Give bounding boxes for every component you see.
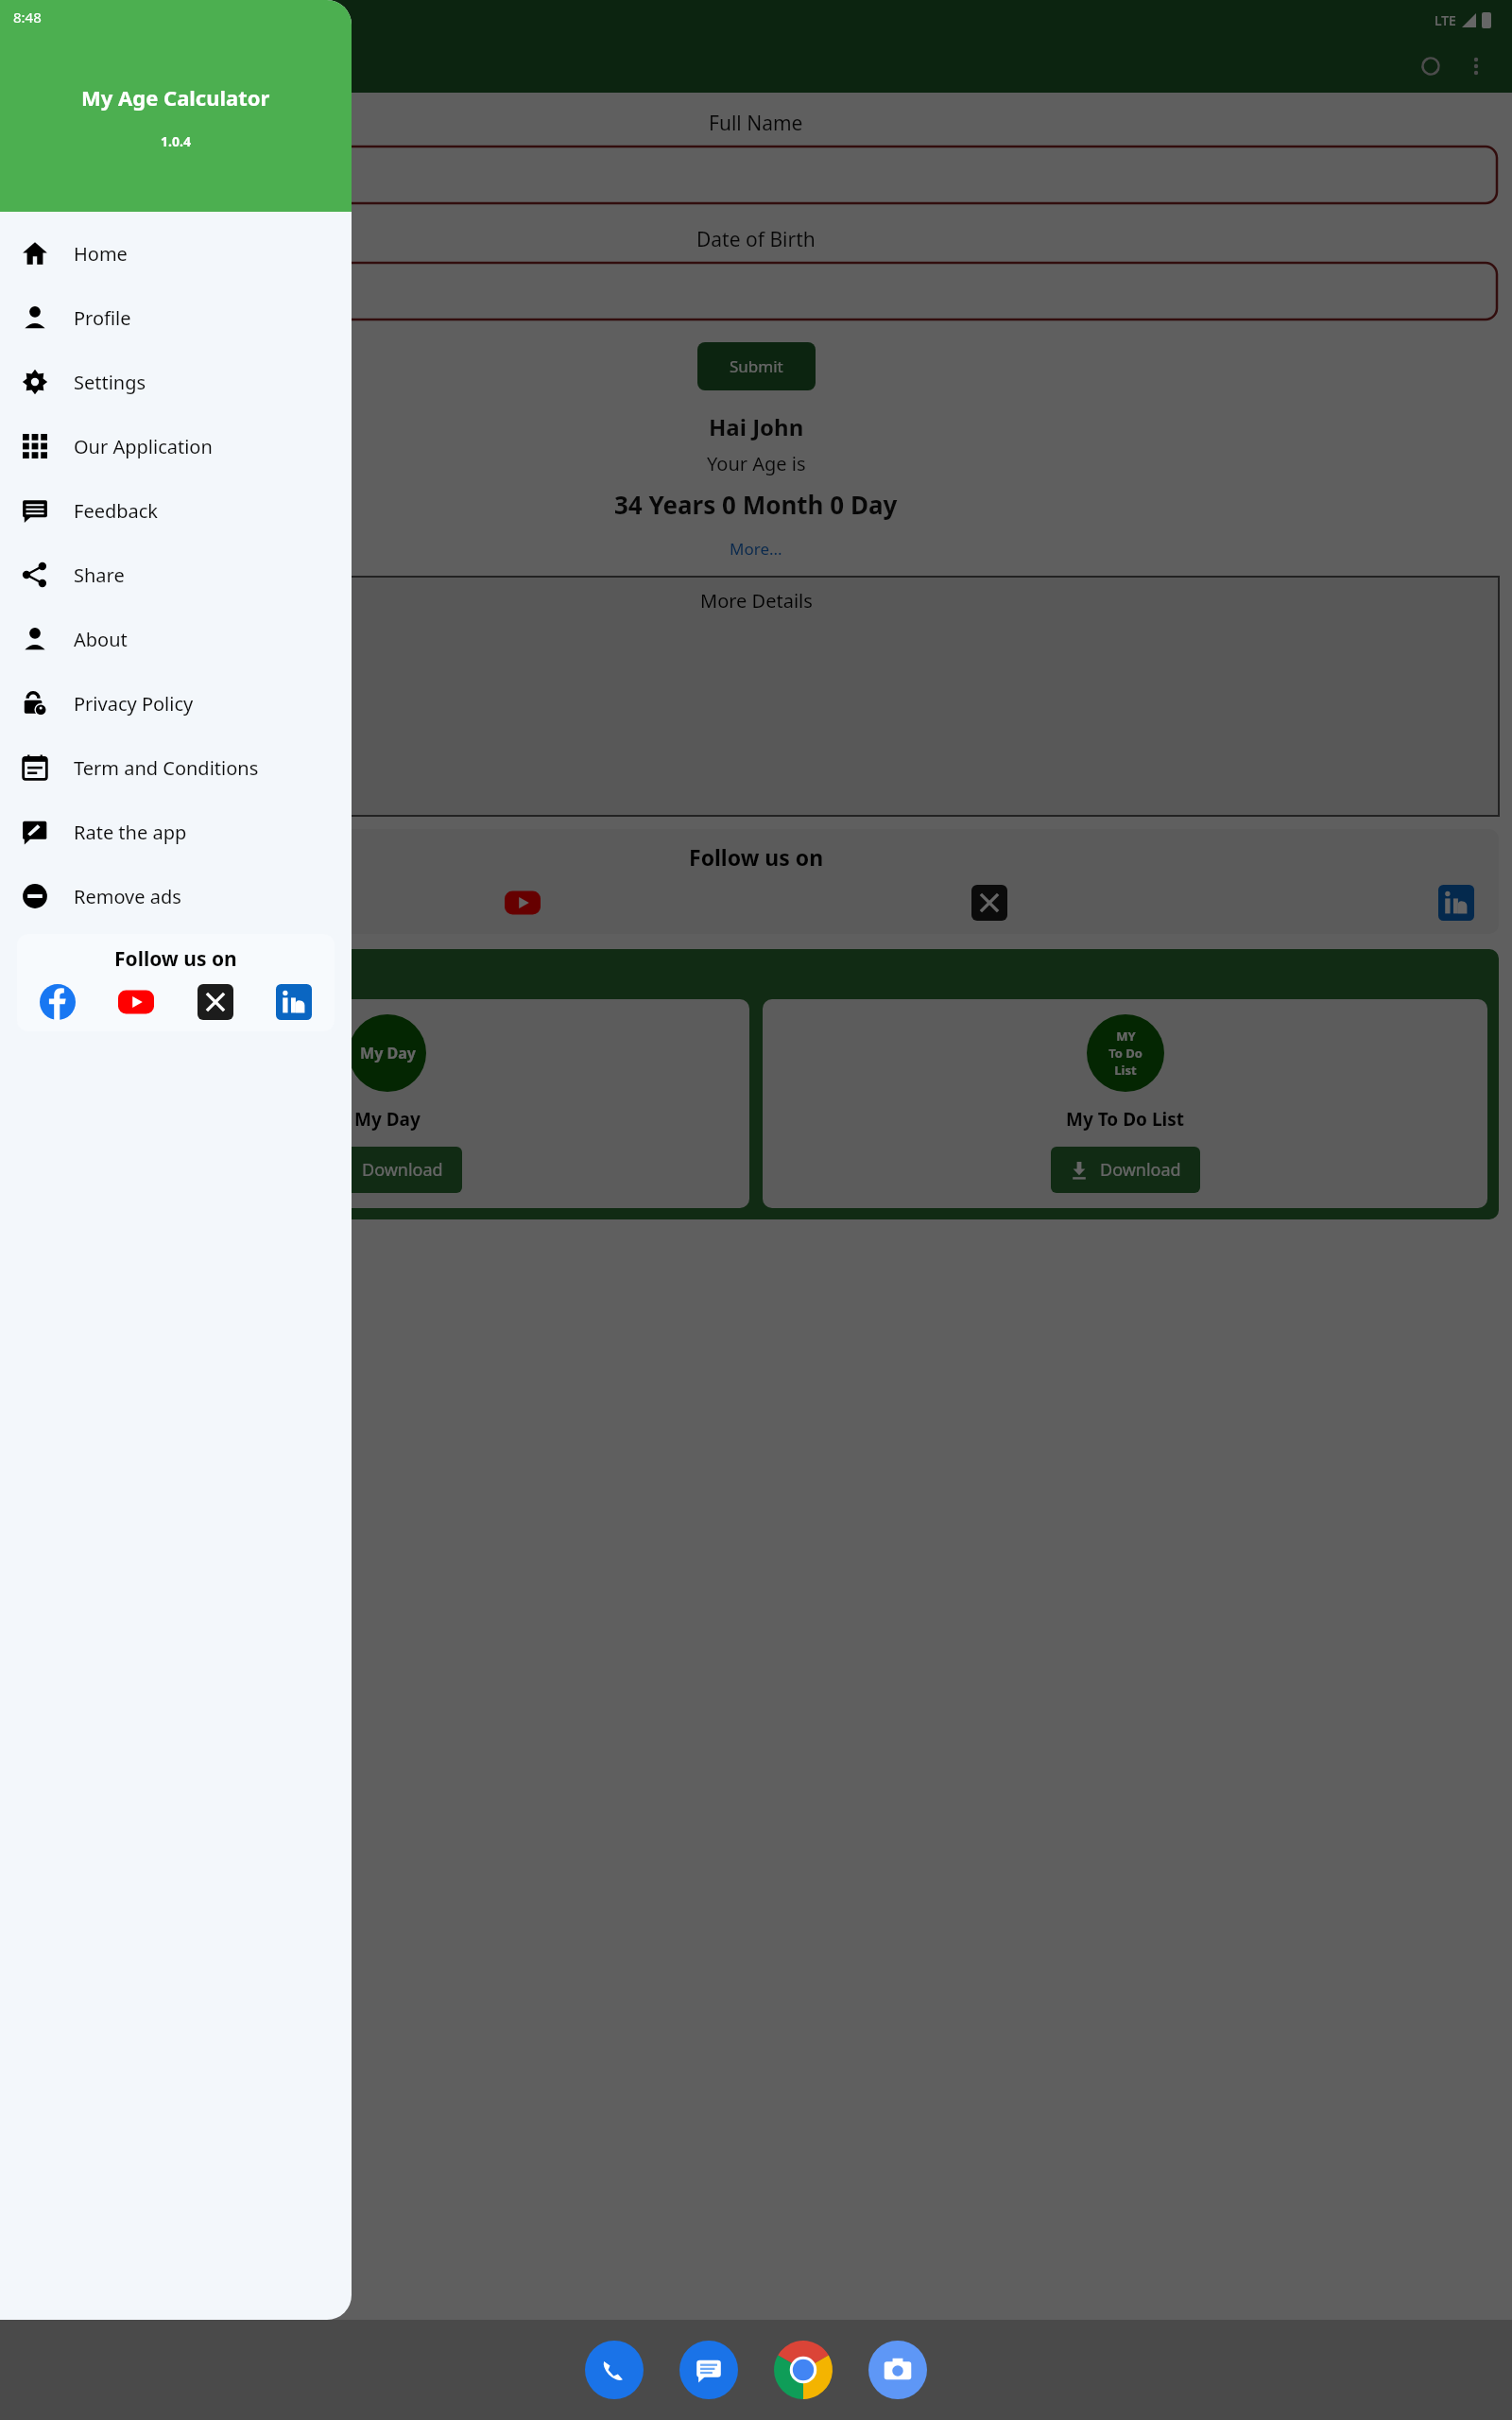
staticText: Settings	[74, 370, 146, 395]
button[interactable]: Profile	[0, 285, 352, 350]
staticText: To Do	[1108, 1045, 1143, 1062]
button[interactable]: Messages	[675, 2336, 743, 2404]
staticText: 1.0.4	[161, 132, 191, 150]
button[interactable]: X	[198, 984, 233, 1020]
staticText: 17882448	[200, 738, 283, 763]
staticText: My Age Calculator	[81, 83, 270, 112]
button[interactable]: Term and Conditions	[0, 735, 352, 800]
staticText: Term and Conditions	[74, 755, 259, 781]
button[interactable]: YouTube	[118, 984, 154, 1020]
staticText: Rate the app	[74, 820, 187, 845]
staticText: Share	[74, 562, 125, 588]
staticText: 1072946900	[200, 774, 303, 799]
staticText: Download	[362, 1158, 443, 1182]
button[interactable]: Rate the app	[0, 800, 352, 864]
staticText: Total Hour :	[30, 702, 129, 727]
button[interactable]: LinkedIn	[276, 984, 312, 1020]
button[interactable]: Download	[1051, 1147, 1200, 1193]
staticText: Download	[1100, 1158, 1181, 1182]
staticText: My Day	[360, 1043, 416, 1063]
staticText: Hai John	[709, 411, 804, 442]
button[interactable]: Refresh	[1408, 43, 1453, 89]
button[interactable]: Download	[313, 1147, 462, 1193]
button[interactable]: Home	[0, 221, 352, 285]
staticText: Full Name	[709, 110, 803, 137]
button[interactable]: Chrome	[769, 2336, 837, 2404]
staticText: 34 Years 0 Month 0 Day	[614, 488, 898, 521]
button[interactable]: My Day	[25, 999, 749, 1208]
staticText: My To Do List	[1066, 1107, 1184, 1132]
button[interactable]: MY	[763, 999, 1487, 1208]
staticText: Date of Birth	[696, 226, 816, 253]
staticText: Total Seconds :	[30, 774, 156, 799]
staticText: Total Month :	[30, 631, 142, 655]
button[interactable]: Feedback	[0, 478, 352, 543]
staticText: Please try our lastest applications	[25, 960, 337, 988]
staticText: More...	[730, 538, 782, 560]
button[interactable]: Privacy Policy	[0, 671, 352, 735]
button[interactable]: Phone	[580, 2336, 648, 2404]
button[interactable]: Submit	[697, 342, 816, 390]
staticText: Profile	[74, 305, 131, 331]
button[interactable]: Our Application	[0, 414, 352, 478]
staticText: 8:48	[13, 8, 42, 26]
staticText: Feedback	[74, 498, 159, 524]
staticText: My Day	[354, 1107, 421, 1132]
staticText: Total Minutes :	[30, 738, 154, 763]
button[interactable]: Camera	[864, 2336, 932, 2404]
button[interactable]: About	[0, 607, 352, 671]
button[interactable]: More options	[1453, 43, 1499, 89]
staticText: Your Age is	[707, 451, 806, 476]
staticText: List	[1114, 1062, 1137, 1079]
staticText: Home	[74, 241, 128, 267]
staticText: Our Application	[74, 434, 213, 459]
button[interactable]: Share	[0, 543, 352, 607]
button[interactable]: Settings	[0, 350, 352, 414]
staticText: LTE	[1435, 11, 1456, 29]
button[interactable]: Facebook	[40, 984, 76, 1020]
staticText: Privacy Policy	[74, 691, 194, 717]
staticText: Submit	[730, 355, 783, 377]
staticText: About	[74, 627, 128, 652]
staticText: Remove ads	[74, 884, 181, 909]
staticText: More Details	[700, 588, 813, 614]
button[interactable]: Remove ads	[0, 864, 352, 928]
staticText: MY	[1116, 1028, 1136, 1045]
staticText: Follow us on	[114, 945, 237, 973]
staticText: Follow us on	[689, 842, 824, 872]
button[interactable]: More...	[724, 532, 788, 565]
